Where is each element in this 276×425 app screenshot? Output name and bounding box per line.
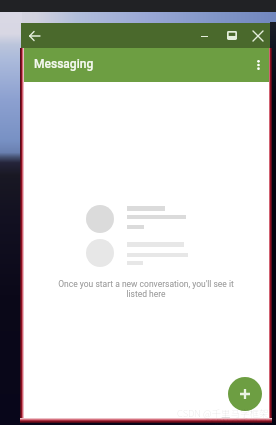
button[interactable]: Maximize — [221, 23, 243, 48]
staticText: Once you start a new conversation, you'l… — [53, 279, 239, 299]
button[interactable]: Close — [246, 23, 269, 48]
button[interactable]: Minimize — [193, 23, 215, 48]
staticText: CSDN @千里马学框架 — [205, 415, 276, 425]
button[interactable]: Back — [22, 23, 46, 48]
button[interactable]: Start new conversation — [228, 377, 262, 411]
staticText: Messaging — [34, 57, 94, 71]
button[interactable]: More options — [246, 48, 270, 82]
staticText: CSDN @千里马学框架 — [177, 406, 269, 420]
